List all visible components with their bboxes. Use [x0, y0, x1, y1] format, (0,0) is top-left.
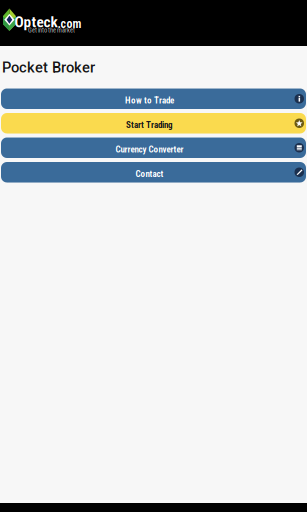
button[interactable]: Contact [1, 162, 306, 182]
staticText: How to Trade [125, 95, 174, 106]
staticText: Contact [135, 168, 163, 179]
button[interactable]: Currency Converter [1, 137, 306, 158]
staticText: Currency Converter [115, 144, 183, 155]
button[interactable]: Start Trading [1, 113, 306, 133]
staticText: .com [58, 17, 82, 31]
staticText: Pocket Broker [2, 59, 95, 76]
staticText: Get into the market [28, 26, 75, 34]
button[interactable]: How to Trade [1, 88, 306, 109]
staticText: Opteck [15, 13, 58, 31]
staticText: Start Trading [126, 119, 173, 130]
